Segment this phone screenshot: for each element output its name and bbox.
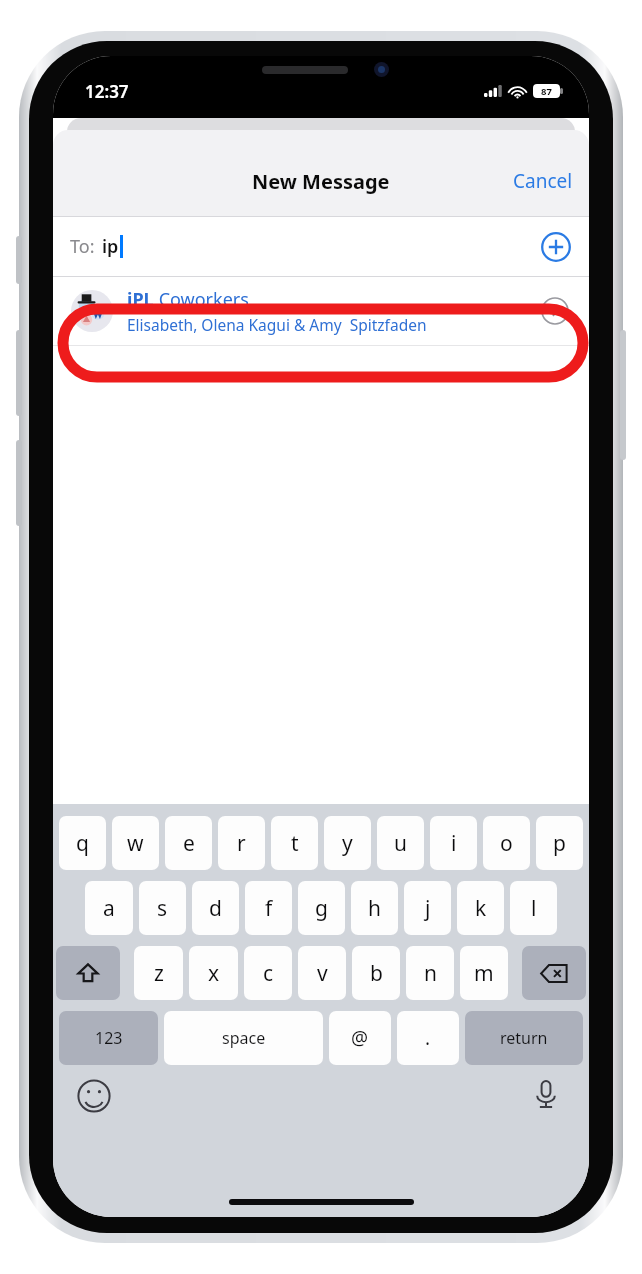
staticText: k (475, 894, 487, 923)
button[interactable]: k (457, 881, 504, 935)
staticText: n (424, 959, 437, 988)
button[interactable]: v (298, 946, 346, 1000)
staticText: 123 (95, 1027, 123, 1049)
staticText: ip (102, 234, 119, 259)
button[interactable]: Show group details (541, 297, 569, 325)
staticText: space (222, 1027, 266, 1049)
staticText: Elisabeth, Olena Kagui & Amy Spitzfaden (127, 314, 427, 335)
button[interactable]: Cancel (497, 160, 589, 202)
staticText: @ (351, 1025, 369, 1051)
button[interactable]: x (189, 946, 238, 1000)
button[interactable]: s (139, 881, 186, 935)
button[interactable]: o (483, 816, 530, 870)
staticText: f (265, 894, 273, 923)
button[interactable]: 123 (59, 1011, 158, 1065)
staticText: j (425, 894, 431, 923)
staticText: i (451, 829, 457, 858)
button[interactable]: l (510, 881, 557, 935)
button[interactable]: return (465, 1011, 583, 1065)
staticText: m (474, 959, 494, 988)
staticText: z (154, 959, 164, 988)
button[interactable]: h (351, 881, 398, 935)
button[interactable]: t (271, 816, 318, 870)
button[interactable]: Dictate (529, 1077, 563, 1111)
staticText: b (370, 959, 383, 988)
button[interactable]: d (192, 881, 239, 935)
staticText: e (183, 829, 195, 858)
button[interactable]: @ (329, 1011, 391, 1065)
staticText: u (394, 829, 407, 858)
staticText: 12:37 (85, 80, 129, 103)
staticText: l (531, 894, 537, 923)
button[interactable]: q (59, 816, 106, 870)
button[interactable]: Add contact (541, 232, 571, 262)
staticText: g (315, 894, 328, 923)
staticText: y (342, 829, 353, 858)
staticText: h (368, 894, 381, 923)
staticText: . (425, 1025, 431, 1051)
staticText: iPL (127, 287, 154, 312)
staticText: w (127, 829, 144, 858)
button[interactable]: j (404, 881, 451, 935)
button[interactable]: e (165, 816, 212, 870)
button[interactable]: Emoji (77, 1079, 111, 1113)
button[interactable]: iPL (53, 277, 589, 345)
staticText: o (500, 829, 513, 858)
staticText: v (317, 959, 328, 988)
button[interactable]: a (85, 881, 133, 935)
button[interactable]: w (112, 816, 159, 870)
button[interactable]: z (134, 946, 183, 1000)
staticText: c (263, 959, 274, 988)
staticText: p (553, 829, 566, 858)
button[interactable]: b (352, 946, 400, 1000)
staticText: return (500, 1027, 548, 1049)
button[interactable]: i (430, 816, 477, 870)
staticText: q (76, 829, 89, 858)
staticText: d (209, 894, 222, 923)
button[interactable]: p (536, 816, 583, 870)
staticText: Cancel (513, 168, 573, 194)
button[interactable]: f (245, 881, 292, 935)
staticText: t (291, 829, 299, 858)
button[interactable]: m (460, 946, 508, 1000)
button[interactable]: g (298, 881, 345, 935)
button[interactable]: c (244, 946, 292, 1000)
staticText: Coworkers (154, 287, 249, 312)
staticText: x (208, 959, 220, 988)
staticText: 87 (541, 85, 552, 98)
staticText: s (157, 894, 168, 923)
button[interactable]: y (324, 816, 371, 870)
button[interactable]: r (218, 816, 265, 870)
button[interactable]: Shift (56, 946, 120, 1000)
button[interactable]: u (377, 816, 424, 870)
staticText: a (103, 894, 115, 923)
staticText: r (237, 829, 246, 858)
button[interactable]: n (406, 946, 454, 1000)
staticText: New Message (252, 168, 390, 195)
button[interactable]: Backspace (522, 946, 586, 1000)
button[interactable]: space (164, 1011, 323, 1065)
staticText: To: (70, 234, 95, 259)
button[interactable]: . (397, 1011, 459, 1065)
